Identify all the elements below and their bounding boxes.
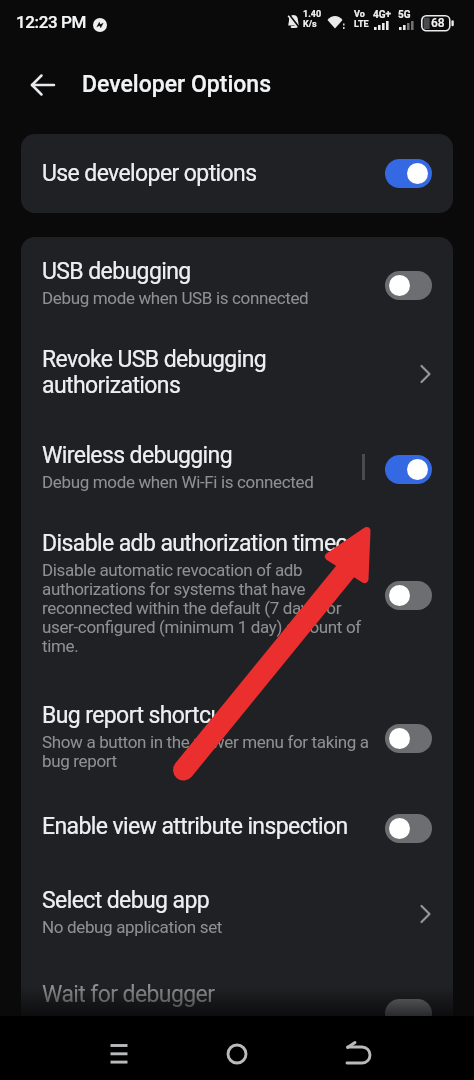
staticText: 1.40 K/s xyxy=(303,9,322,29)
staticText: Vo LTE xyxy=(354,9,369,29)
button[interactable] xyxy=(328,1026,382,1080)
button[interactable]: Use developer options xyxy=(21,134,453,213)
button[interactable]: Enable view attribute inspection xyxy=(21,788,453,868)
staticText: 12:23 PM xyxy=(16,12,86,32)
button[interactable] xyxy=(385,581,432,610)
button[interactable]: Bug report shortcut xyxy=(21,686,453,790)
staticText: No debug application set xyxy=(42,917,223,937)
button[interactable] xyxy=(18,60,68,110)
button[interactable] xyxy=(385,271,432,300)
staticText: 5G xyxy=(398,9,411,21)
staticText: Wireless debugging xyxy=(42,442,233,469)
button[interactable] xyxy=(92,1026,146,1080)
button[interactable]: USB debugging xyxy=(21,245,453,325)
staticText: 68 xyxy=(431,16,445,30)
staticText: Revoke USB debugging authorizations xyxy=(42,346,267,399)
button[interactable] xyxy=(385,455,432,484)
staticText: Debug mode when Wi-Fi is connected xyxy=(42,472,314,492)
button[interactable]: Revoke USB debugging authorizations xyxy=(21,333,453,415)
button[interactable]: Wireless debugging xyxy=(21,428,453,510)
staticText: Enable view attribute inspection xyxy=(42,813,348,840)
button[interactable]: Disable adb authorization timeout xyxy=(21,516,453,674)
button[interactable] xyxy=(385,159,432,188)
staticText: 4G+ xyxy=(373,9,392,21)
staticText: Disable automatic revocation of adb auth… xyxy=(42,560,361,656)
staticText: Developer Options xyxy=(82,71,272,98)
staticText: Select debug app xyxy=(42,887,210,914)
button[interactable] xyxy=(210,1026,264,1080)
staticText: Debug mode when USB is connected xyxy=(42,288,309,308)
staticText: Wait for debugger xyxy=(42,981,215,1008)
staticText: Show a button in the power menu for taki… xyxy=(42,732,369,771)
staticText: Use developer options xyxy=(42,160,257,187)
button[interactable] xyxy=(385,814,432,843)
button[interactable]: Select debug app xyxy=(21,872,453,956)
staticText: Bug report shortcut xyxy=(42,702,230,729)
button[interactable] xyxy=(385,724,432,753)
staticText: Disable adb authorization timeout xyxy=(42,530,368,557)
staticText: USB debugging xyxy=(42,258,191,285)
button[interactable]: Wait for debugger xyxy=(21,954,453,1016)
